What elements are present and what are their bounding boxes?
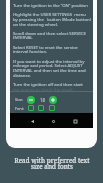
- staticText: If you want to adjust the interval by: [13, 58, 85, 64]
- button[interactable]: Increase text size: [49, 96, 57, 104]
- staticText: Turn the ignition off and then start: [13, 81, 83, 87]
- staticText: Size:: [15, 97, 24, 102]
- staticText: the engine to check the result.: [13, 86, 75, 92]
- staticText: by pressing the button (Mode button): [13, 16, 91, 22]
- staticText: INTERVAL and then set the time and: [13, 67, 86, 73]
- staticText: Select RESET to reset the service: [13, 44, 78, 50]
- staticText: Read with preferred text size and fonts: [12, 156, 92, 171]
- button[interactable]: Font style: [38, 105, 44, 111]
- staticText: 18: [40, 97, 46, 103]
- staticText: Scroll down and then select SERVICE: [13, 30, 86, 36]
- staticText: mileage and period. Select ADJUST: [13, 62, 83, 68]
- staticText: INTERVAL: [13, 34, 33, 40]
- button[interactable]: Back: [27, 116, 37, 126]
- staticText: distance.: [13, 72, 32, 78]
- staticText: on the steering wheel.: [13, 21, 59, 27]
- staticText: Highlight the USER SETTINGS menu: [13, 11, 87, 17]
- button[interactable]: Font style: [28, 105, 34, 111]
- staticText: Turn the ignition to the “ON” position: [13, 2, 88, 8]
- button[interactable]: Home: [48, 116, 58, 126]
- button[interactable]: Recent apps: [70, 116, 80, 126]
- staticText: Font:: [15, 106, 25, 111]
- button[interactable]: Font style: [49, 105, 55, 111]
- staticText: interval function.: [13, 48, 48, 54]
- button[interactable]: Decrease text size: [27, 96, 35, 104]
